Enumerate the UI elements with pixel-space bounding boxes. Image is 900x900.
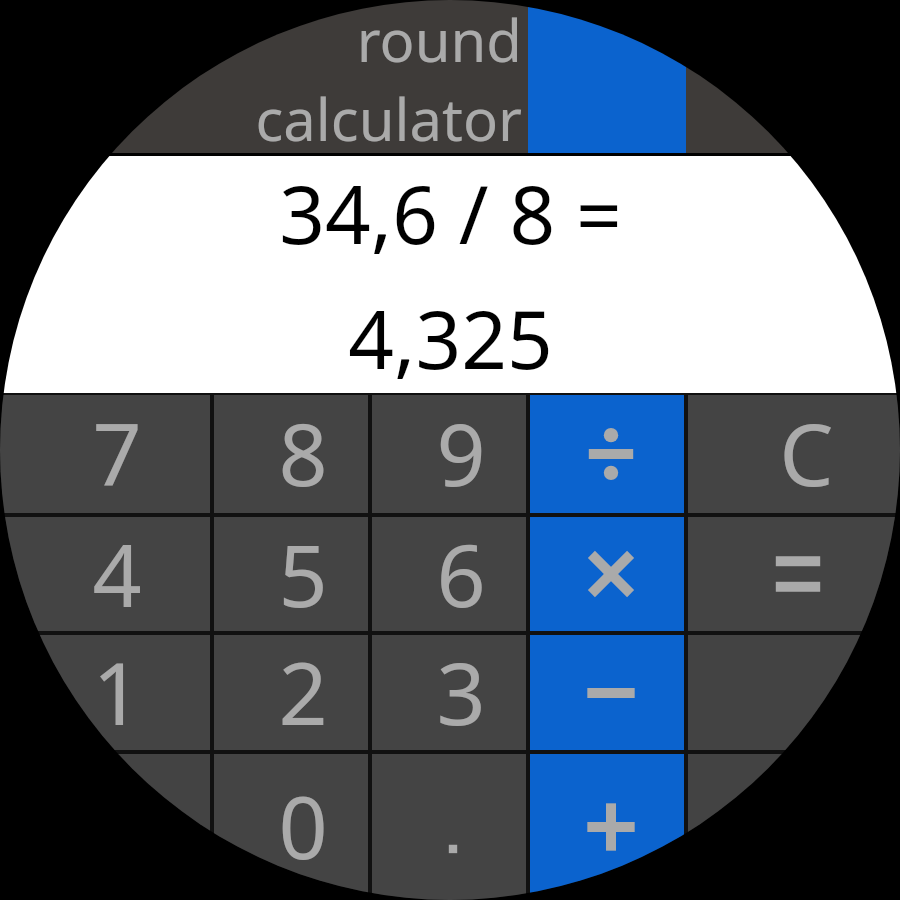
button[interactable]: Add: [530, 754, 684, 900]
button[interactable]: 8: [214, 395, 368, 513]
staticText: 34,6 / 8 =: [279, 158, 622, 267]
button[interactable]: Subtract: [530, 635, 684, 750]
staticText: 7: [92, 394, 142, 511]
button[interactable]: 5: [214, 517, 368, 631]
staticText: 4,325: [348, 283, 553, 392]
button[interactable]: round: [0, 0, 528, 153]
staticText: 8: [278, 394, 328, 511]
button[interactable]: Equals: [688, 517, 900, 631]
button[interactable]: 9: [372, 395, 526, 513]
button[interactable]: 1: [0, 635, 210, 750]
button[interactable]: 7: [0, 395, 210, 513]
staticText: 2: [278, 633, 328, 748]
staticText: 0: [278, 767, 328, 884]
button[interactable]: 2: [214, 635, 368, 750]
button[interactable]: 3: [372, 635, 526, 750]
staticText: round: [356, 0, 522, 79]
button[interactable]: Divide: [530, 395, 684, 513]
button[interactable]: 6: [372, 517, 526, 631]
staticText: 1: [92, 633, 142, 748]
staticText: calculator: [255, 79, 522, 147]
staticText: 5: [278, 515, 328, 629]
staticText: 9: [436, 394, 486, 511]
button[interactable]: 34,6 / 8 =: [0, 156, 900, 393]
button[interactable]: Multiply: [530, 517, 684, 631]
button[interactable]: 0: [214, 754, 368, 900]
button[interactable]: C: [688, 395, 900, 513]
button[interactable]: 4: [0, 517, 210, 631]
button[interactable]: Decimal point: [372, 754, 526, 900]
staticText: 4: [92, 515, 142, 629]
staticText: 6: [436, 515, 486, 629]
staticText: C: [779, 394, 834, 511]
staticText: 3: [436, 633, 486, 748]
